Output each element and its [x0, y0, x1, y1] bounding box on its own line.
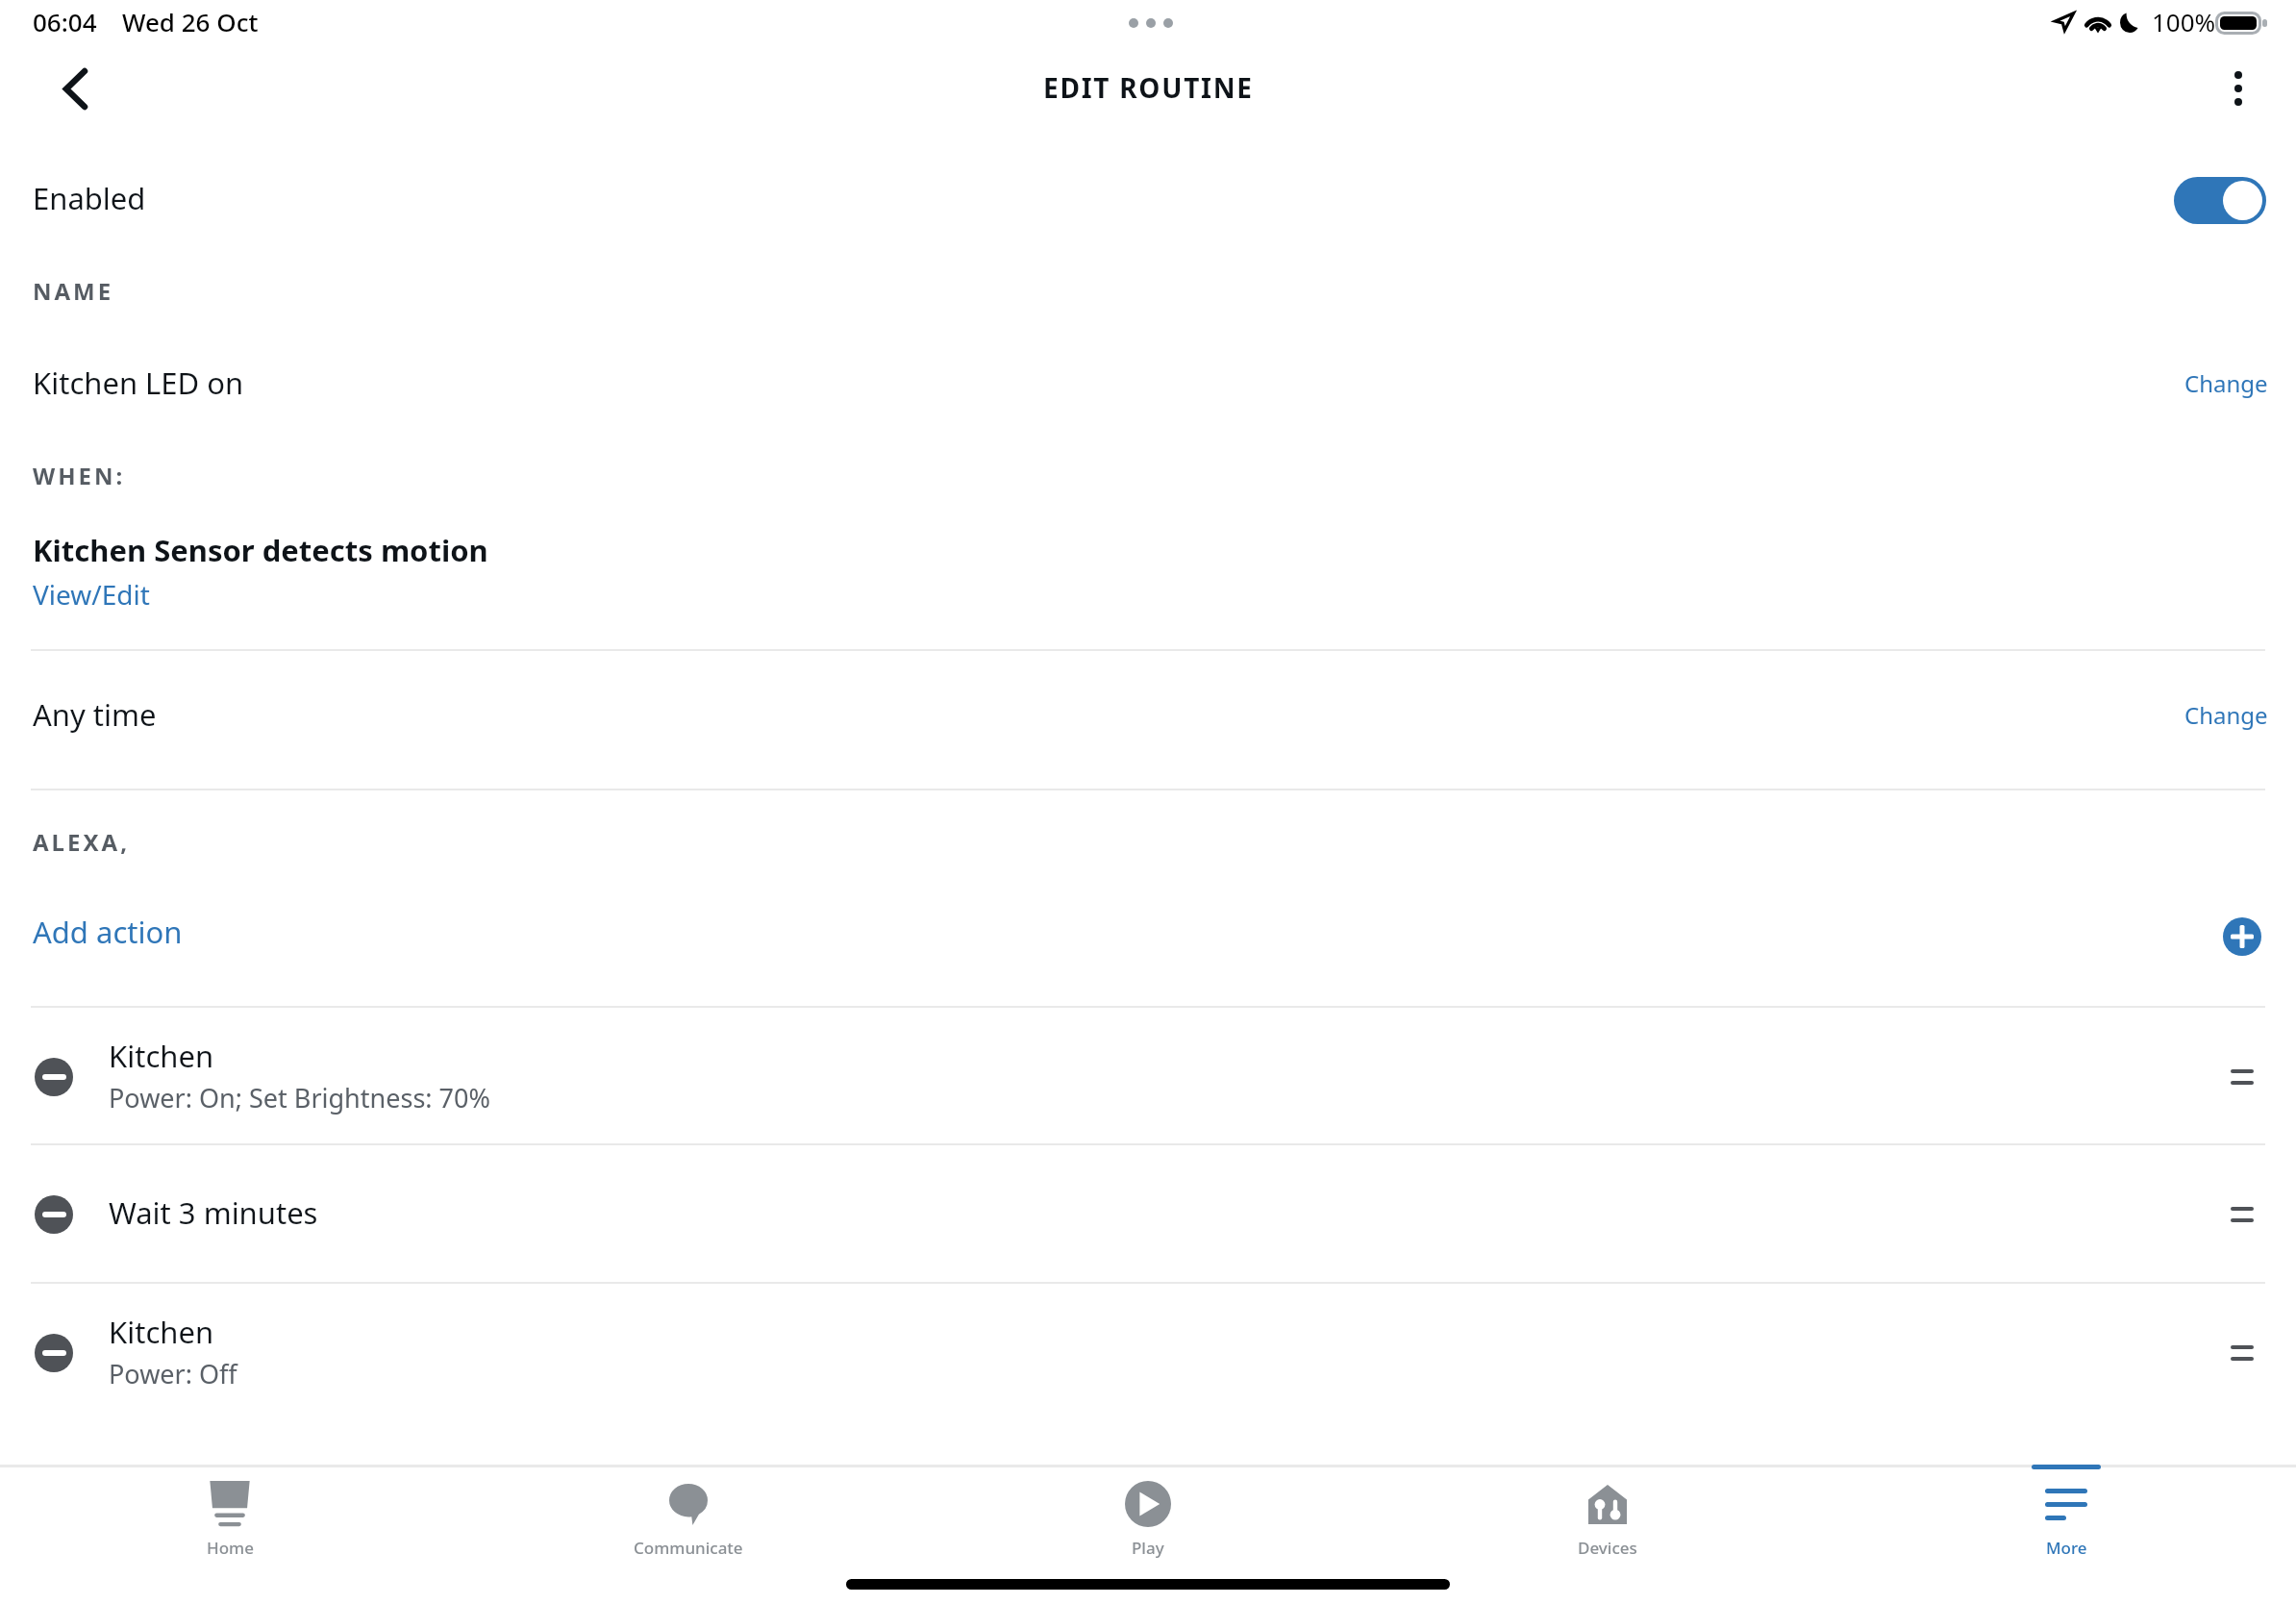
- button[interactable]: [460, 1466, 918, 1562]
- button[interactable]: [0, 1006, 2296, 1143]
- staticText: Add action: [33, 912, 183, 952]
- staticText: Wed 26 Oct: [122, 5, 259, 38]
- button[interactable]: Back: [40, 54, 110, 123]
- button[interactable]: [0, 651, 2296, 788]
- staticText: Power: On; Set Brightness: 70%: [109, 1080, 490, 1115]
- button[interactable]: [0, 144, 2296, 255]
- button[interactable]: [0, 1143, 2296, 1281]
- button[interactable]: Reorder: [2221, 1330, 2263, 1376]
- button[interactable]: [0, 337, 2296, 428]
- staticText: 06:04: [33, 5, 97, 38]
- staticText: WHEN:: [33, 460, 126, 491]
- button[interactable]: Remove action: [35, 1058, 73, 1096]
- staticText: 100%: [2152, 5, 2216, 38]
- staticText: Play: [1132, 1537, 1164, 1559]
- staticText: View/Edit: [33, 576, 150, 613]
- button[interactable]: Add action: [2223, 917, 2261, 956]
- staticText: NAME: [33, 275, 114, 307]
- staticText: Communicate: [634, 1537, 743, 1559]
- button[interactable]: [1837, 1466, 2296, 1562]
- button[interactable]: [2165, 686, 2271, 745]
- button[interactable]: [1379, 1466, 1837, 1562]
- button[interactable]: Reorder: [2221, 1191, 2263, 1238]
- button[interactable]: Reorder: [2221, 1054, 2263, 1100]
- staticText: EDIT ROUTINE: [1043, 69, 1254, 106]
- staticText: Kitchen Sensor detects motion: [33, 530, 488, 570]
- staticText: Kitchen: [109, 1036, 214, 1076]
- button[interactable]: Remove action: [35, 1334, 73, 1372]
- button[interactable]: [1, 1466, 460, 1562]
- button[interactable]: [0, 885, 2296, 1004]
- button[interactable]: Remove action: [35, 1195, 73, 1234]
- staticText: Change: [2184, 699, 2268, 731]
- staticText: Kitchen LED on: [33, 363, 244, 403]
- staticText: ALEXA,: [33, 826, 130, 858]
- staticText: Any time: [33, 694, 157, 735]
- staticText: Kitchen: [109, 1312, 214, 1352]
- button[interactable]: Enabled toggle: [2174, 177, 2266, 224]
- staticText: Wait 3 minutes: [109, 1192, 318, 1233]
- button[interactable]: [919, 1466, 1378, 1562]
- button[interactable]: [2165, 354, 2271, 414]
- button[interactable]: [27, 573, 190, 627]
- staticText: Power: Off: [109, 1356, 237, 1391]
- button[interactable]: [0, 1282, 2296, 1419]
- staticText: Home: [207, 1537, 254, 1559]
- staticText: Devices: [1578, 1537, 1637, 1559]
- staticText: Change: [2184, 367, 2268, 399]
- button[interactable]: More options: [2204, 54, 2273, 123]
- staticText: More: [2046, 1537, 2087, 1559]
- staticText: Enabled: [33, 178, 146, 218]
